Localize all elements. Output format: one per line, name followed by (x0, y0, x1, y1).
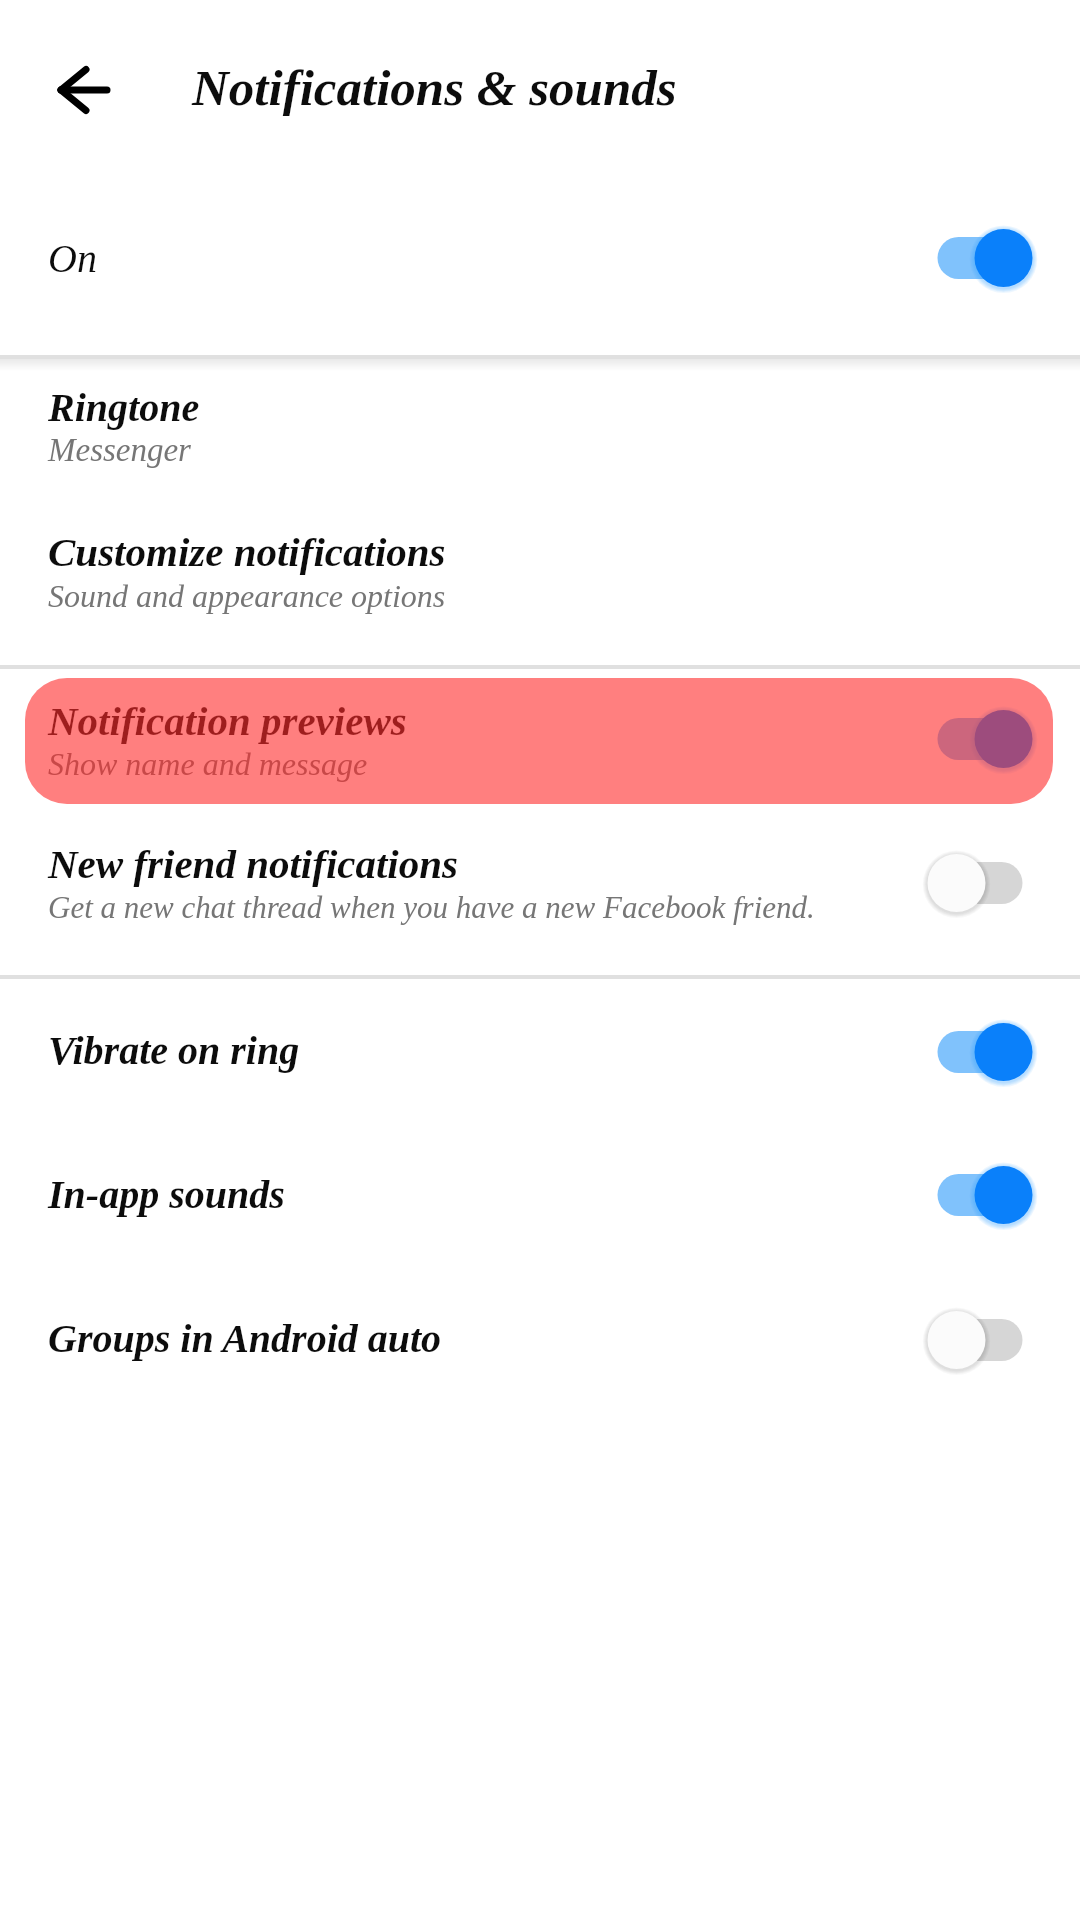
staticText: Messenger (48, 432, 191, 469)
button[interactable]: Vibrate on ring (905, 997, 1055, 1107)
staticText: Notification previews (48, 698, 407, 743)
button[interactable]: Vibrate on ring (0, 979, 1080, 1123)
button[interactable]: Notification previews (0, 669, 1080, 810)
button[interactable]: New friend notifications (905, 828, 1055, 938)
button[interactable] (25, 678, 1053, 804)
staticText: Show name and message (48, 746, 368, 781)
staticText: Vibrate on ring (48, 1028, 300, 1072)
button[interactable]: Customize notifications (0, 513, 1080, 665)
staticText: Get a new chat thread when you have a ne… (48, 890, 815, 924)
button[interactable]: Groups in Android auto (905, 1285, 1055, 1395)
staticText: Ringtone (48, 385, 200, 429)
button[interactable]: In-app sounds (0, 1123, 1080, 1267)
button[interactable]: Groups in Android auto (0, 1267, 1080, 1411)
staticText: Notifications & sounds (192, 60, 677, 116)
staticText: New friend notifications (48, 841, 459, 886)
staticText: Sound and appearance options (48, 578, 446, 613)
button[interactable]: Ringtone (0, 368, 1080, 513)
button[interactable]: In-app sounds (905, 1140, 1055, 1250)
button[interactable]: Back (29, 35, 139, 145)
staticText: Groups in Android auto (48, 1316, 442, 1360)
button[interactable]: New friend notifications (0, 810, 1080, 975)
button[interactable]: On (905, 203, 1055, 313)
button[interactable]: On (0, 180, 1080, 354)
staticText: In-app sounds (48, 1172, 285, 1216)
staticText: On (48, 236, 97, 280)
staticText: Customize notifications (48, 529, 446, 574)
button[interactable]: Notification previews (905, 684, 1055, 794)
